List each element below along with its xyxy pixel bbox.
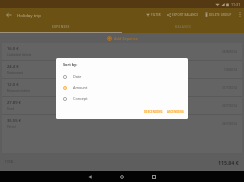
staticText: Cathedral tickets <box>7 53 32 57</box>
staticText: Amount <box>73 85 88 90</box>
staticText: BALANCE <box>175 25 192 29</box>
staticText: Date <box>73 74 82 79</box>
button[interactable]: 27.89 € <box>2 97 242 114</box>
staticText: 24.4 € <box>7 64 19 70</box>
button[interactable]: EXPENSES <box>0 21 122 33</box>
staticText: 11:31 <box>231 2 241 7</box>
staticText: 115.84 € <box>218 159 239 166</box>
staticText: 1/8/2014 <box>224 68 237 72</box>
staticText: 30/7/2014 <box>222 104 237 108</box>
staticText: EXPORT BALANCE <box>172 13 199 17</box>
button[interactable]: BALANCE <box>122 21 244 33</box>
button[interactable]: Navigate up <box>0 8 17 21</box>
staticText: Petrol <box>7 125 16 129</box>
staticText: Concept <box>73 96 88 101</box>
staticText: 12.0 € <box>7 82 19 88</box>
button[interactable]: FILTER <box>143 8 164 21</box>
button[interactable]: EXPORT BALANCE <box>164 8 202 21</box>
staticText: FILTER <box>151 13 161 17</box>
button[interactable]: 35.55 € <box>2 115 242 132</box>
button[interactable]: 12.0 € <box>2 79 242 96</box>
staticText: DELETE GROUP <box>209 13 232 17</box>
button[interactable]: Concept <box>56 93 188 104</box>
button[interactable]: Amount <box>56 82 188 93</box>
staticText: 25/8/2014 <box>222 50 237 54</box>
staticText: 27.89 € <box>7 100 21 106</box>
staticText: 26/7/2014 <box>222 122 237 126</box>
staticText: Add Expense <box>114 36 138 41</box>
staticText: Sort by: <box>63 62 78 67</box>
staticText: Holiday trip <box>17 12 41 18</box>
button[interactable]: DELETE GROUP <box>202 8 235 21</box>
staticText: EXPENSES <box>52 25 70 29</box>
button[interactable]: DESCENDING <box>142 108 165 116</box>
button[interactable]: Date <box>56 71 188 82</box>
button[interactable]: More options <box>235 8 244 21</box>
staticText: Museum tickets <box>7 89 30 93</box>
button[interactable]: ASCENDING <box>165 108 186 116</box>
button[interactable]: 24.4 € <box>2 61 242 78</box>
staticText: Restaurant <box>7 71 23 75</box>
staticText: TOTAL <box>5 160 14 164</box>
staticText: Food <box>7 107 15 111</box>
button[interactable]: Home <box>106 171 138 182</box>
button[interactable]: Recent apps <box>138 171 170 182</box>
button[interactable]: Add Expense <box>0 33 244 43</box>
button[interactable]: 16.0 € <box>2 43 242 60</box>
button[interactable]: Back <box>74 171 106 182</box>
staticText: 35.55 € <box>7 118 21 124</box>
staticText: 31/7/2014 <box>222 86 237 90</box>
staticText: 16.0 € <box>7 46 19 52</box>
